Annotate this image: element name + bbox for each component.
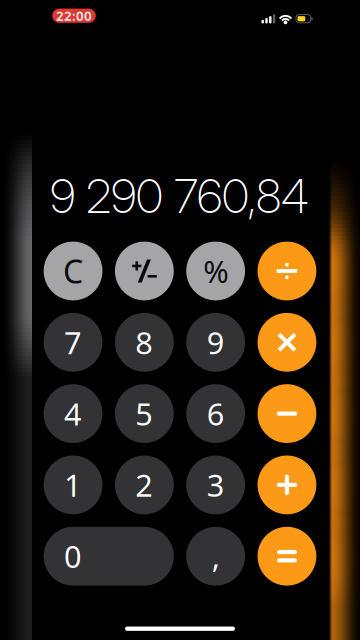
button[interactable]: Plus	[257, 455, 316, 514]
staticText: 9	[207, 322, 225, 363]
button[interactable]	[44, 242, 102, 300]
staticText: 5	[135, 393, 153, 434]
staticText: %	[203, 251, 228, 291]
button[interactable]	[186, 242, 245, 300]
staticText: C	[63, 250, 83, 292]
staticText: 7	[64, 322, 82, 363]
staticText: 8	[135, 322, 153, 363]
staticText: 6	[207, 393, 225, 434]
button[interactable]	[44, 384, 102, 443]
staticText: ,	[212, 536, 220, 576]
button[interactable]: Equals	[257, 527, 316, 586]
button[interactable]	[115, 313, 174, 372]
button[interactable]	[186, 313, 245, 372]
staticText: 4	[64, 393, 82, 434]
button[interactable]	[115, 384, 174, 443]
staticText: 22:00	[56, 7, 92, 24]
button[interactable]: Minus	[257, 384, 316, 443]
button[interactable]: Plus Minus	[115, 242, 174, 300]
button[interactable]: Multiply	[257, 313, 316, 372]
button[interactable]	[44, 313, 102, 372]
staticText: 1	[64, 464, 82, 505]
button[interactable]: Divide	[257, 242, 316, 300]
staticText: 2	[135, 464, 153, 505]
button[interactable]	[186, 455, 245, 514]
button[interactable]	[44, 527, 174, 586]
staticText: 0	[64, 536, 82, 576]
button[interactable]	[44, 455, 102, 514]
staticText: 3	[207, 464, 225, 505]
button[interactable]	[186, 384, 245, 443]
button[interactable]	[115, 455, 174, 514]
button[interactable]	[186, 527, 245, 586]
staticText: 9 290 760,84	[50, 168, 309, 224]
